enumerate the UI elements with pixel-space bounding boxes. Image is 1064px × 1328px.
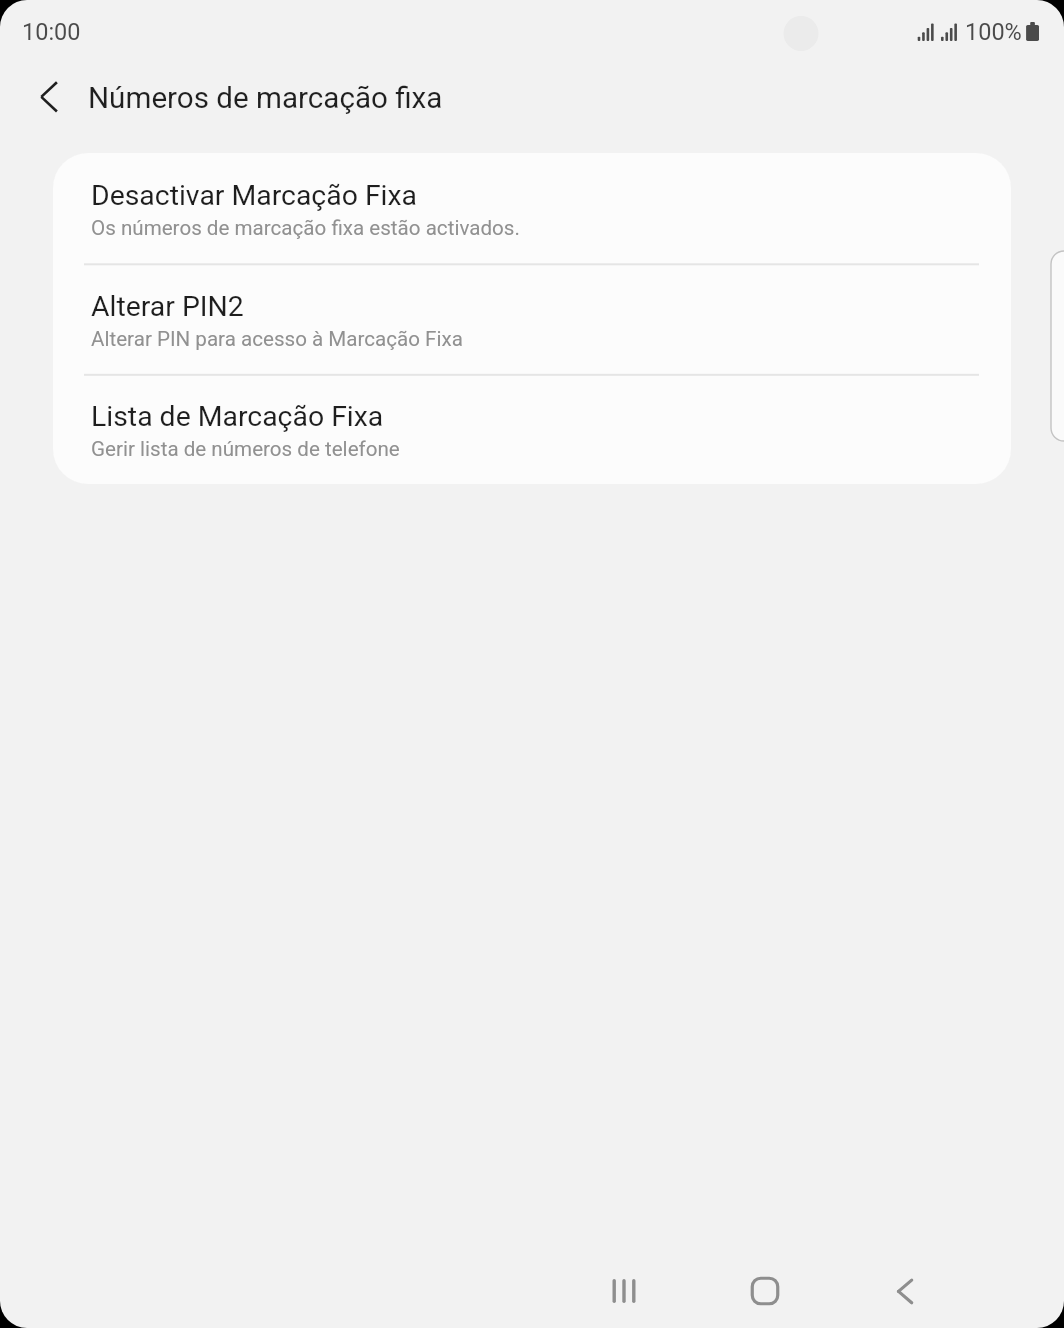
staticText: Lista de Marcação Fixa bbox=[91, 400, 384, 433]
staticText: Alterar PIN para acesso à Marcação Fixa bbox=[91, 327, 463, 351]
button[interactable]: Home bbox=[705, 1254, 825, 1328]
staticText: 100% bbox=[965, 18, 1022, 46]
button[interactable]: Lista de Marcação Fixa bbox=[53, 374, 1011, 484]
staticText: 10:00 bbox=[22, 18, 81, 46]
button[interactable]: Recent apps bbox=[564, 1254, 684, 1328]
button[interactable]: Alterar PIN2 bbox=[53, 264, 1011, 375]
button[interactable]: Desactivar Marcação Fixa bbox=[53, 153, 1011, 264]
staticText: Gerir lista de números de telefone bbox=[91, 437, 400, 461]
button[interactable]: Back bbox=[845, 1254, 965, 1328]
staticText: Alterar PIN2 bbox=[91, 290, 244, 323]
staticText: Números de marcação fixa bbox=[88, 81, 443, 116]
staticText: Desactivar Marcação Fixa bbox=[91, 179, 418, 212]
staticText: Os números de marcação fixa estão activa… bbox=[91, 216, 520, 240]
button[interactable]: Navigate up bbox=[21, 69, 77, 125]
